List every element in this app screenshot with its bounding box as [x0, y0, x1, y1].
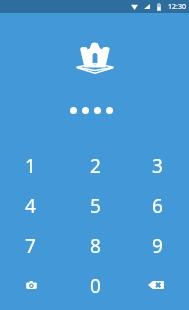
button[interactable]: 6: [126, 186, 188, 226]
staticText: 6: [152, 193, 163, 219]
button[interactable]: 5: [64, 186, 126, 226]
button[interactable]: 7: [0, 226, 61, 266]
staticText: 12:30: [168, 2, 186, 12]
staticText: 5: [90, 193, 101, 219]
button[interactable]: Delete: [126, 266, 188, 306]
staticText: 1: [25, 153, 36, 179]
staticText: 3: [152, 153, 163, 179]
button[interactable]: 8: [64, 226, 126, 266]
button[interactable]: Camera: [0, 266, 61, 306]
staticText: 7: [25, 233, 36, 259]
staticText: 0: [90, 273, 101, 299]
other: Camera: [26, 281, 37, 290]
button[interactable]: 2: [64, 146, 126, 186]
button[interactable]: 1: [0, 146, 61, 186]
button[interactable]: 0: [64, 266, 126, 306]
staticText: 8: [90, 233, 101, 259]
staticText: 4: [25, 193, 36, 219]
button[interactable]: 9: [126, 226, 188, 266]
staticText: 2: [90, 153, 101, 179]
button[interactable]: 3: [126, 146, 188, 186]
staticText: 9: [152, 233, 163, 259]
other: Delete: [148, 281, 164, 289]
button[interactable]: 4: [0, 186, 61, 226]
